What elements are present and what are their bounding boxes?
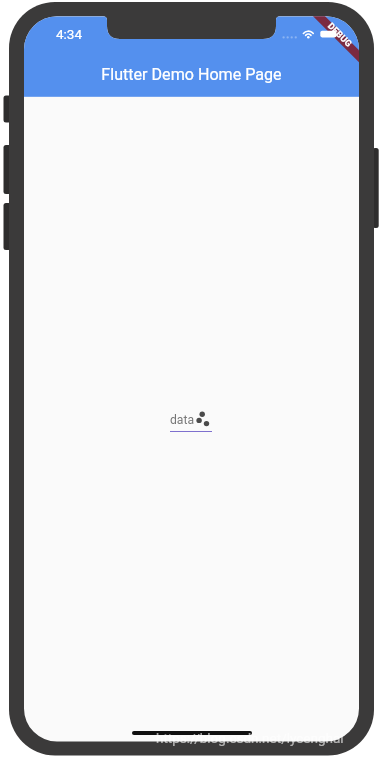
- staticText: data: [170, 413, 195, 427]
- staticText: DEBUG: [325, 21, 354, 50]
- staticText: https://blog.csdn.net/lycenghai: [156, 730, 344, 746]
- other: Signal, Wi-Fi and battery status: [280, 25, 340, 43]
- staticText: 4:34: [56, 26, 83, 42]
- staticText: Flutter Demo Home Page: [101, 65, 282, 84]
- button[interactable]: data: [168, 406, 214, 434]
